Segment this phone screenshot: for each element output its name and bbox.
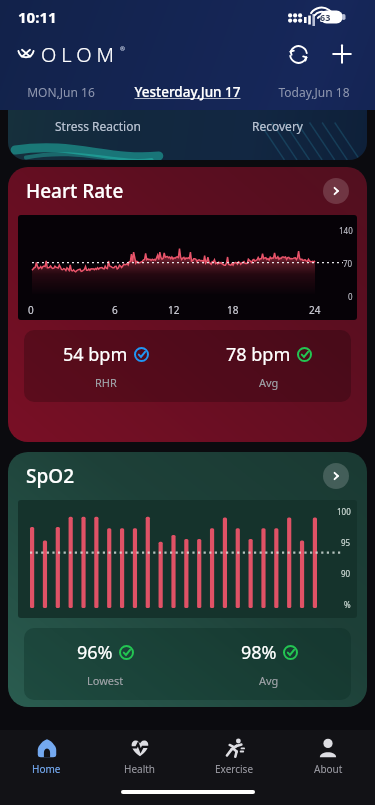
button[interactable]: Open details	[323, 178, 349, 204]
staticText: 70	[343, 258, 353, 269]
button[interactable]: 78 bpm	[187, 330, 351, 402]
button[interactable]: 96%	[24, 628, 187, 700]
button[interactable]: Stress Reaction	[8, 110, 367, 160]
staticText: 95	[341, 537, 351, 548]
button[interactable]: 98%	[187, 628, 351, 700]
button[interactable]: MON,Jun 16	[0, 74, 122, 110]
staticText: %	[344, 599, 351, 610]
staticText: 54 bpm	[63, 342, 128, 367]
button[interactable]: Home	[0, 730, 93, 782]
staticText: Health	[124, 762, 156, 776]
button[interactable]: Exercise	[187, 730, 281, 782]
staticText: Avg	[259, 375, 279, 390]
staticText: Home	[32, 762, 61, 776]
staticText: 6	[112, 303, 118, 317]
staticText: Avg	[259, 673, 279, 688]
staticText: 140	[339, 225, 353, 236]
button[interactable]: Add	[325, 37, 359, 71]
staticText: SpO2	[26, 463, 74, 489]
button[interactable]: About	[281, 730, 375, 782]
staticText: Recovery	[252, 118, 303, 134]
staticText: OLOM	[41, 41, 120, 68]
button[interactable]: Open details	[323, 463, 349, 489]
staticText: 12	[168, 303, 180, 317]
staticText: Exercise	[215, 762, 254, 776]
staticText: 0	[28, 303, 34, 317]
button[interactable]: SpO2	[8, 452, 367, 707]
staticText: 100	[337, 506, 351, 517]
staticText: RHR	[95, 375, 117, 390]
staticText: Heart Rate	[26, 178, 124, 204]
staticText: 96%	[77, 640, 113, 665]
button[interactable]: Yesterday,Jun 17	[122, 74, 253, 110]
staticText: 63	[320, 11, 331, 23]
staticText: About	[314, 762, 343, 776]
button[interactable]: 54 bpm	[24, 330, 187, 402]
button[interactable]: Today,Jun 18	[253, 74, 375, 110]
button[interactable]: Heart Rate	[8, 167, 367, 442]
staticText: 18	[227, 303, 239, 317]
staticText: MON,Jun 16	[27, 84, 95, 100]
staticText: 0	[348, 291, 353, 302]
staticText: ®	[120, 45, 125, 53]
staticText: Today,Jun 18	[278, 84, 350, 100]
staticText: 10:11	[18, 7, 57, 27]
staticText: 98%	[241, 640, 277, 665]
staticText: Yesterday,Jun 17	[134, 83, 241, 101]
button[interactable]: Health	[93, 730, 187, 782]
staticText: 90	[341, 568, 351, 579]
button[interactable]: Sync	[281, 37, 315, 71]
staticText: 24	[309, 303, 321, 317]
staticText: Stress Reaction	[55, 118, 141, 134]
staticText: 78 bpm	[226, 342, 291, 367]
staticText: Lowest	[87, 673, 124, 688]
